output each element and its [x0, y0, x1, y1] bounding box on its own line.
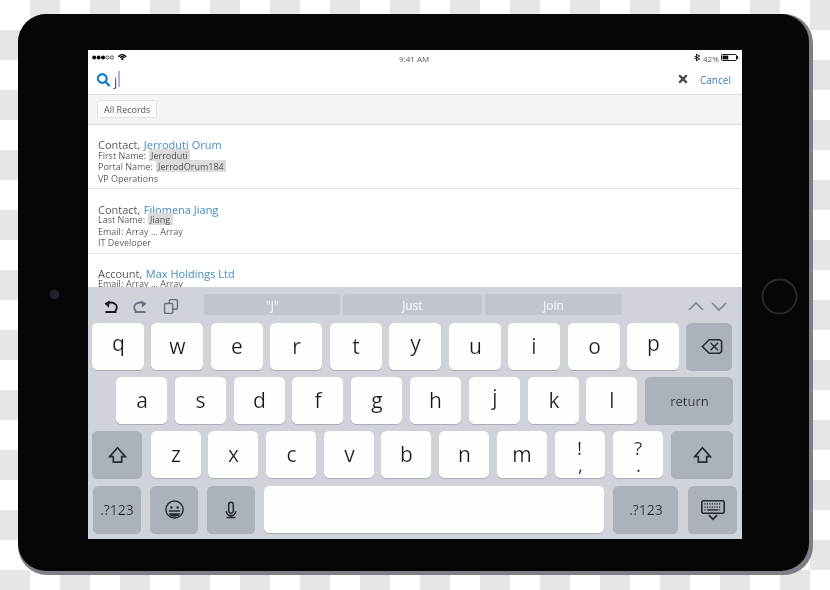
button[interactable]: h: [410, 377, 461, 424]
staticText: i: [531, 332, 537, 361]
button[interactable]: "J": [204, 294, 340, 315]
button[interactable]: c: [266, 431, 316, 478]
staticText: Jerroduti: [151, 149, 188, 161]
button[interactable]: u: [449, 323, 501, 370]
staticText: Email:: [98, 225, 126, 237]
button[interactable]: n: [439, 431, 489, 478]
button[interactable]: t: [330, 323, 382, 370]
staticText: 42%: [703, 53, 719, 64]
staticText: Account,: [98, 266, 143, 281]
staticText: Jiang: [150, 213, 171, 225]
staticText: w: [169, 332, 186, 361]
button[interactable]: Shift: [92, 431, 142, 478]
staticText: Join: [543, 297, 564, 313]
button[interactable]: f: [292, 377, 343, 424]
button[interactable]: All Records: [98, 101, 156, 117]
staticText: x: [228, 440, 239, 469]
staticText: a: [136, 386, 148, 415]
staticText: t: [352, 332, 360, 361]
staticText: Just: [402, 297, 423, 313]
button[interactable]: ?: [613, 431, 663, 478]
button[interactable]: k: [528, 377, 579, 424]
button[interactable]: a: [116, 377, 167, 424]
button[interactable]: w: [151, 323, 203, 370]
button[interactable]: Cancel: [698, 70, 733, 90]
staticText: VP Operations: [98, 172, 159, 184]
staticText: q: [112, 329, 125, 358]
staticText: Contact,: [98, 202, 141, 217]
staticText: .: [636, 452, 641, 478]
button[interactable]: .?123: [613, 486, 678, 533]
staticText: IT Developer: [98, 236, 151, 248]
button[interactable]: [88, 196, 742, 253]
button[interactable]: Next field: [708, 298, 730, 314]
button[interactable]: l: [586, 377, 637, 424]
staticText: Portal Name:: [98, 160, 156, 172]
button[interactable]: e: [211, 323, 263, 370]
staticText: e: [231, 332, 243, 361]
staticText: "J": [266, 297, 279, 313]
staticText: r: [292, 332, 301, 361]
button[interactable]: g: [351, 377, 402, 424]
button[interactable]: j: [469, 377, 520, 424]
staticText: u: [469, 332, 482, 361]
button[interactable]: d: [234, 377, 285, 424]
staticText: d: [253, 386, 266, 415]
staticText: f: [314, 386, 322, 415]
staticText: j: [114, 72, 118, 90]
button[interactable]: r: [270, 323, 322, 370]
staticText: k: [548, 386, 560, 415]
staticText: .?123: [629, 500, 663, 519]
staticText: First Name:: [98, 149, 149, 161]
staticText: Max Holdings Ltd: [143, 266, 235, 281]
button[interactable]: b: [381, 431, 431, 478]
button[interactable]: Paste: [160, 295, 182, 318]
button[interactable]: Join: [485, 294, 622, 315]
button[interactable]: x: [208, 431, 258, 478]
button[interactable]: m: [497, 431, 547, 478]
staticText: Email:: [98, 277, 126, 289]
staticText: j: [492, 383, 498, 412]
button[interactable]: Clear search: [673, 69, 693, 89]
staticText: l: [609, 386, 615, 415]
button[interactable]: [88, 131, 742, 188]
button[interactable]: Dictate: [207, 486, 255, 533]
staticText: .?123: [100, 500, 134, 519]
button[interactable]: Hide keyboard: [688, 486, 737, 533]
button[interactable]: s: [175, 377, 226, 424]
staticText: y: [410, 329, 421, 358]
staticText: Cancel: [700, 73, 731, 87]
button[interactable]: [88, 260, 742, 288]
button[interactable]: z: [151, 431, 201, 478]
button[interactable]: Backspace: [686, 323, 732, 370]
staticText: ?: [634, 435, 643, 461]
staticText: All Records: [104, 103, 151, 115]
button[interactable]: y: [389, 323, 441, 370]
button[interactable]: return: [645, 377, 733, 424]
button[interactable]: v: [324, 431, 374, 478]
staticText: Contact,: [98, 137, 141, 152]
button[interactable]: p: [627, 323, 679, 370]
button[interactable]: i: [508, 323, 560, 370]
staticText: s: [195, 386, 206, 415]
staticText: 9:41 AM: [399, 53, 430, 64]
staticText: Array ... Array: [126, 277, 183, 289]
button[interactable]: !: [555, 431, 605, 478]
button[interactable]: Just: [343, 294, 482, 315]
button[interactable]: Undo: [100, 295, 123, 317]
button[interactable]: q: [92, 323, 144, 370]
button[interactable]: Redo: [128, 295, 151, 317]
button[interactable]: Previous field: [685, 298, 707, 314]
staticText: p: [647, 329, 660, 358]
button[interactable]: o: [568, 323, 620, 370]
button[interactable]: .?123: [93, 486, 141, 533]
staticText: g: [371, 386, 383, 415]
button[interactable]: Emoji: [150, 486, 198, 533]
button[interactable]: Shift: [671, 431, 733, 478]
staticText: JerrodOrum184: [158, 160, 224, 172]
staticText: h: [429, 386, 442, 415]
staticText: v: [344, 440, 355, 469]
staticText: b: [400, 440, 413, 469]
staticText: Filomena Jiang: [141, 202, 219, 217]
